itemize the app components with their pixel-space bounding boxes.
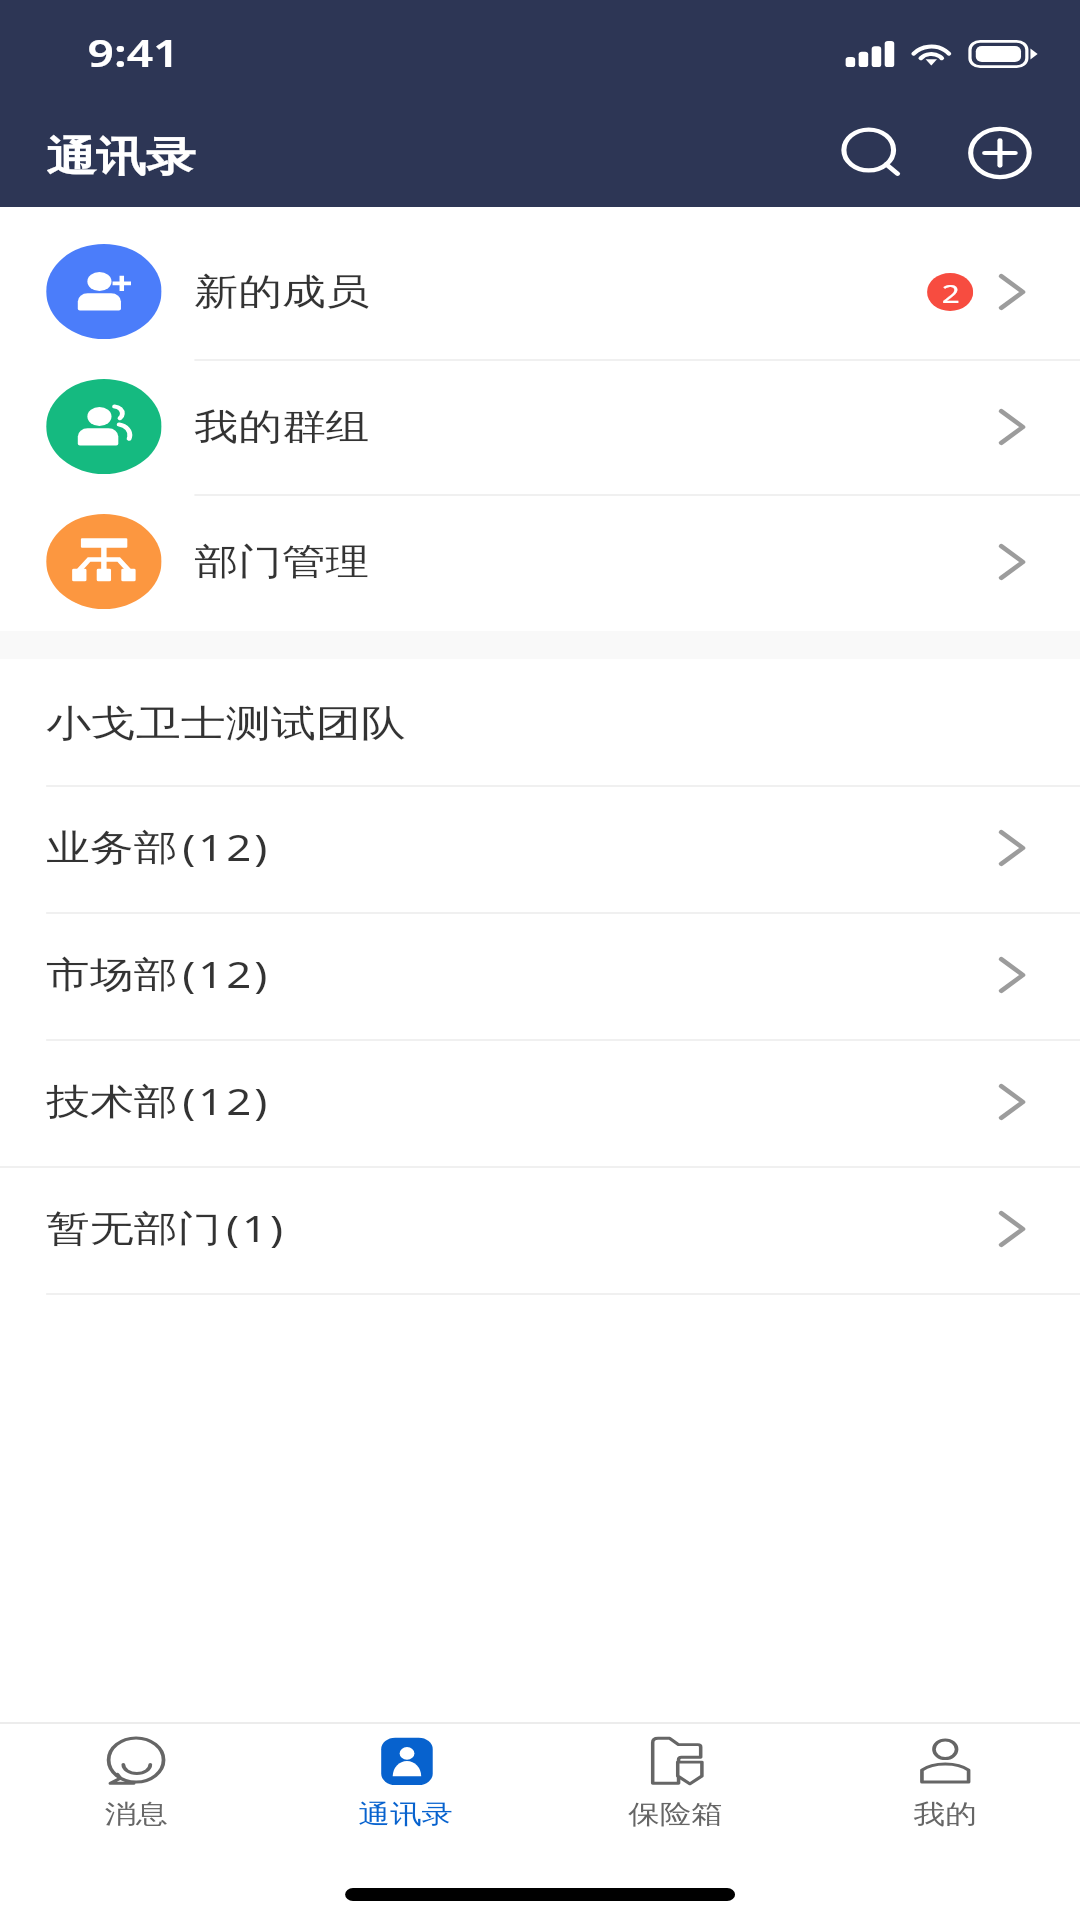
staticText: (12) [182,950,271,999]
staticText: 小戈卫士测试团队 [46,700,406,747]
staticText: 部门管理 [194,539,369,584]
button[interactable]: 新的成员 [0,226,1080,361]
button[interactable]: 暂无部门 [0,1168,1080,1295]
button[interactable]: 消息 [0,1724,271,1831]
staticText: (1) [226,1204,287,1253]
button[interactable]: 保险箱 [541,1724,810,1831]
button[interactable]: 部门管理 [0,496,1080,631]
staticText: 市场部 [46,952,177,997]
staticText: 业务部 [46,825,177,870]
staticText: 新的成员 [194,269,369,314]
button[interactable]: 通讯录 [271,1724,541,1831]
staticText: (12) [182,1077,271,1126]
button[interactable]: 我的 [810,1724,1080,1831]
staticText: 通讯录 [358,1798,453,1831]
button[interactable]: Add [956,117,1044,189]
staticText: 2 [942,275,960,310]
staticText: (12) [182,823,271,872]
staticText: 暂无部门 [46,1206,221,1251]
staticText: 我的群组 [194,404,369,449]
staticText: 通讯录 [46,132,196,184]
staticText: 9:41 [87,26,180,78]
button[interactable]: 市场部 [0,914,1080,1041]
staticText: 我的 [914,1798,977,1831]
button[interactable]: Search [825,114,912,186]
button[interactable]: 业务部 [0,787,1080,914]
button[interactable]: 我的群组 [0,361,1080,496]
staticText: 消息 [104,1798,168,1831]
staticText: 保险箱 [628,1798,723,1831]
staticText: 技术部 [46,1079,177,1124]
button[interactable]: 技术部 [0,1041,1080,1168]
